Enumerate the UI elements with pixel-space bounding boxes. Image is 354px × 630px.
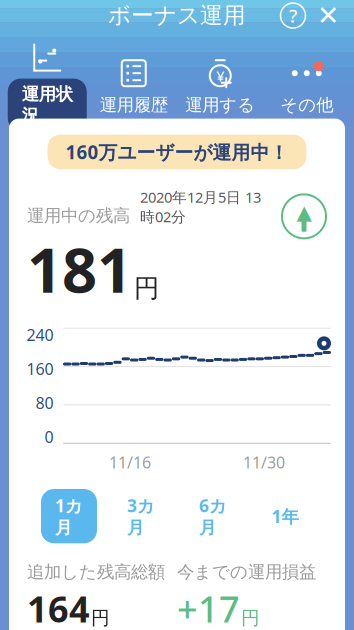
staticText: +17 [177, 585, 240, 630]
button[interactable]: ¥ [177, 56, 263, 117]
staticText: 160万ユーザーが運用中！ [65, 140, 288, 164]
button[interactable]: 閉じる [310, 0, 346, 34]
staticText: 運用状況 [22, 84, 73, 126]
staticText: 181 [27, 228, 132, 310]
button[interactable]: 6カ月 [185, 489, 241, 543]
staticText: 円 [91, 606, 110, 629]
staticText: 円 [241, 606, 260, 629]
staticText: ✕ [317, 0, 339, 31]
staticText: 0 [44, 426, 53, 447]
staticText: 164 [27, 585, 90, 630]
button[interactable]: 運用履歴 [90, 56, 177, 117]
staticText: 運用履歴 [100, 94, 168, 115]
staticText: ¥ [216, 66, 224, 85]
staticText: 1年 [271, 505, 298, 528]
staticText: 追加した残高総額 [27, 561, 165, 583]
staticText: ボーナス運用 [108, 2, 246, 29]
staticText: ▲ [296, 201, 311, 224]
staticText: 運用中の残高 [27, 205, 130, 226]
staticText: 運用する [185, 94, 255, 115]
staticText: 240 [26, 324, 53, 345]
staticText: 11/16 [109, 452, 151, 473]
staticText: 80 [35, 392, 53, 413]
staticText: ? [289, 3, 297, 28]
button[interactable]: その他 [263, 56, 350, 117]
staticText: 今までの運用損益 [177, 561, 316, 583]
button[interactable]: 3カ月 [113, 489, 169, 543]
staticText: 3カ月 [127, 494, 155, 538]
button[interactable]: ヘルプ [276, 0, 310, 33]
staticText: その他 [280, 94, 333, 115]
staticText: 2020年12月5日 13時02分 [140, 187, 261, 226]
staticText: 160 [26, 358, 53, 379]
staticText: 円 [134, 273, 159, 304]
staticText: 11/30 [243, 452, 285, 473]
button[interactable]: 運用状況 [4, 41, 90, 133]
button[interactable]: 1カ月 [41, 489, 97, 543]
staticText: 1カ月 [55, 494, 83, 538]
button[interactable]: 1年 [257, 500, 312, 533]
staticText: 6カ月 [199, 494, 227, 538]
